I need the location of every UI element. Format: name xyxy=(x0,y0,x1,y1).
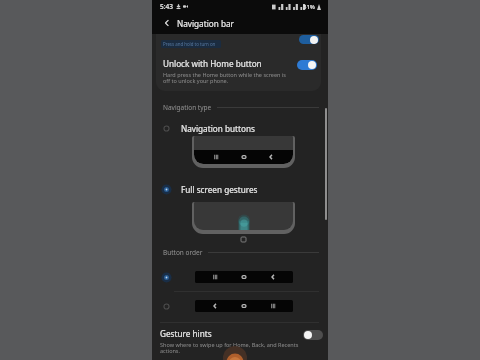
button[interactable]: Turn off xyxy=(297,60,317,70)
staticText: 5:43 xyxy=(160,2,173,11)
button[interactable]: Full screen gestures xyxy=(152,184,328,195)
button[interactable] xyxy=(152,268,328,286)
button[interactable]: Unlock with Home button xyxy=(156,48,321,85)
staticText: Press and hold to turn on xyxy=(163,41,216,47)
staticText: Button order xyxy=(163,248,203,257)
staticText: Show where to swipe up for Home, Back, a… xyxy=(160,341,299,355)
staticText: 31% xyxy=(303,3,315,11)
button[interactable]: Turn on xyxy=(303,330,323,340)
staticText: Hard press the Home button while the scr… xyxy=(163,71,294,85)
button[interactable]: Press and hold to turn on xyxy=(156,39,321,48)
button[interactable]: Gesture hints xyxy=(152,328,328,355)
staticText: Navigation buttons xyxy=(181,123,255,134)
staticText: Navigation type xyxy=(163,103,212,112)
staticText: Unlock with Home button xyxy=(163,58,262,69)
staticText: Navigation bar xyxy=(177,18,234,29)
staticText: Full screen gestures xyxy=(181,184,258,195)
button[interactable]: Back xyxy=(159,12,175,34)
button[interactable]: Navigation buttons xyxy=(152,123,328,134)
staticText: Gesture hints xyxy=(160,328,212,339)
button[interactable] xyxy=(152,297,328,315)
